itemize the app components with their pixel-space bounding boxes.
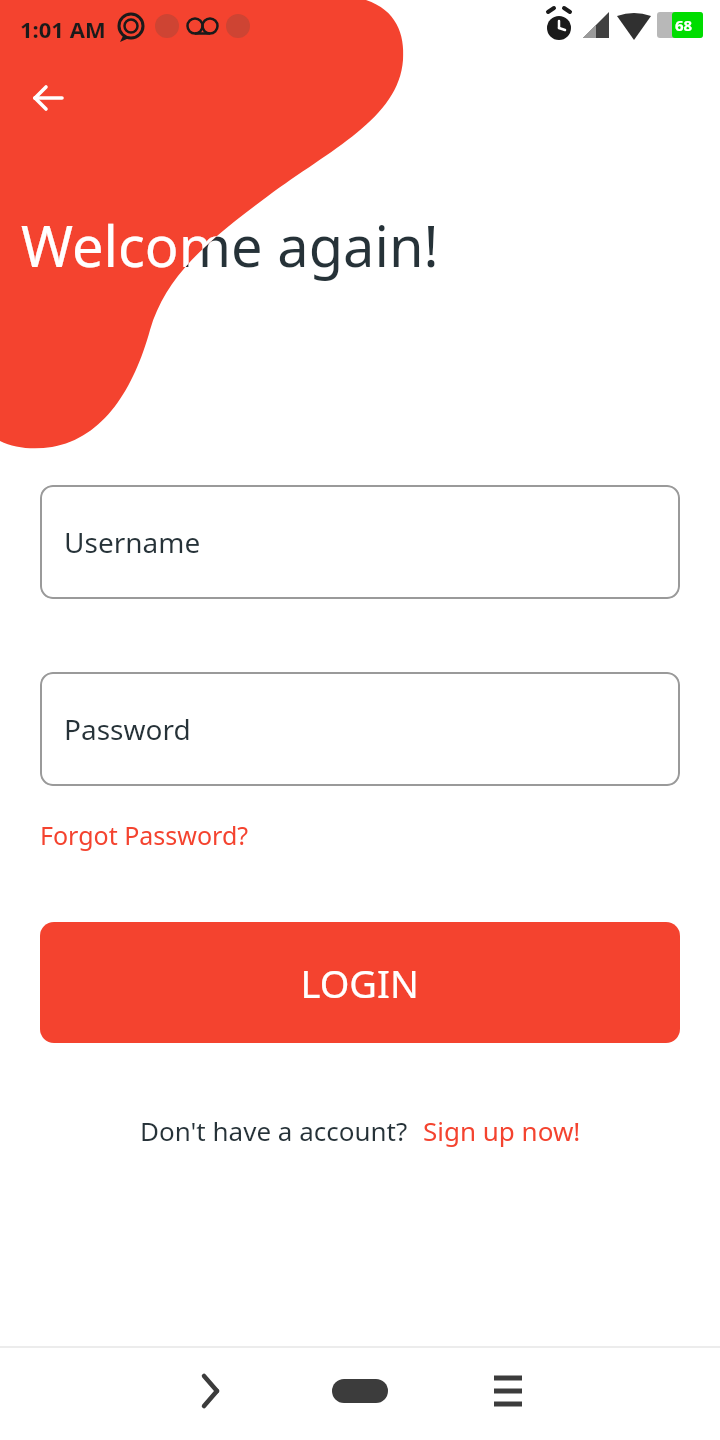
button[interactable] xyxy=(40,818,260,854)
button[interactable] xyxy=(420,1110,585,1150)
button[interactable] xyxy=(40,485,680,599)
button[interactable] xyxy=(40,922,680,1043)
button[interactable]: Back xyxy=(20,70,76,126)
button[interactable]: Home xyxy=(330,1361,390,1421)
button[interactable]: Recent apps xyxy=(478,1361,538,1421)
button[interactable]: Back xyxy=(180,1361,240,1421)
button[interactable] xyxy=(40,672,680,786)
